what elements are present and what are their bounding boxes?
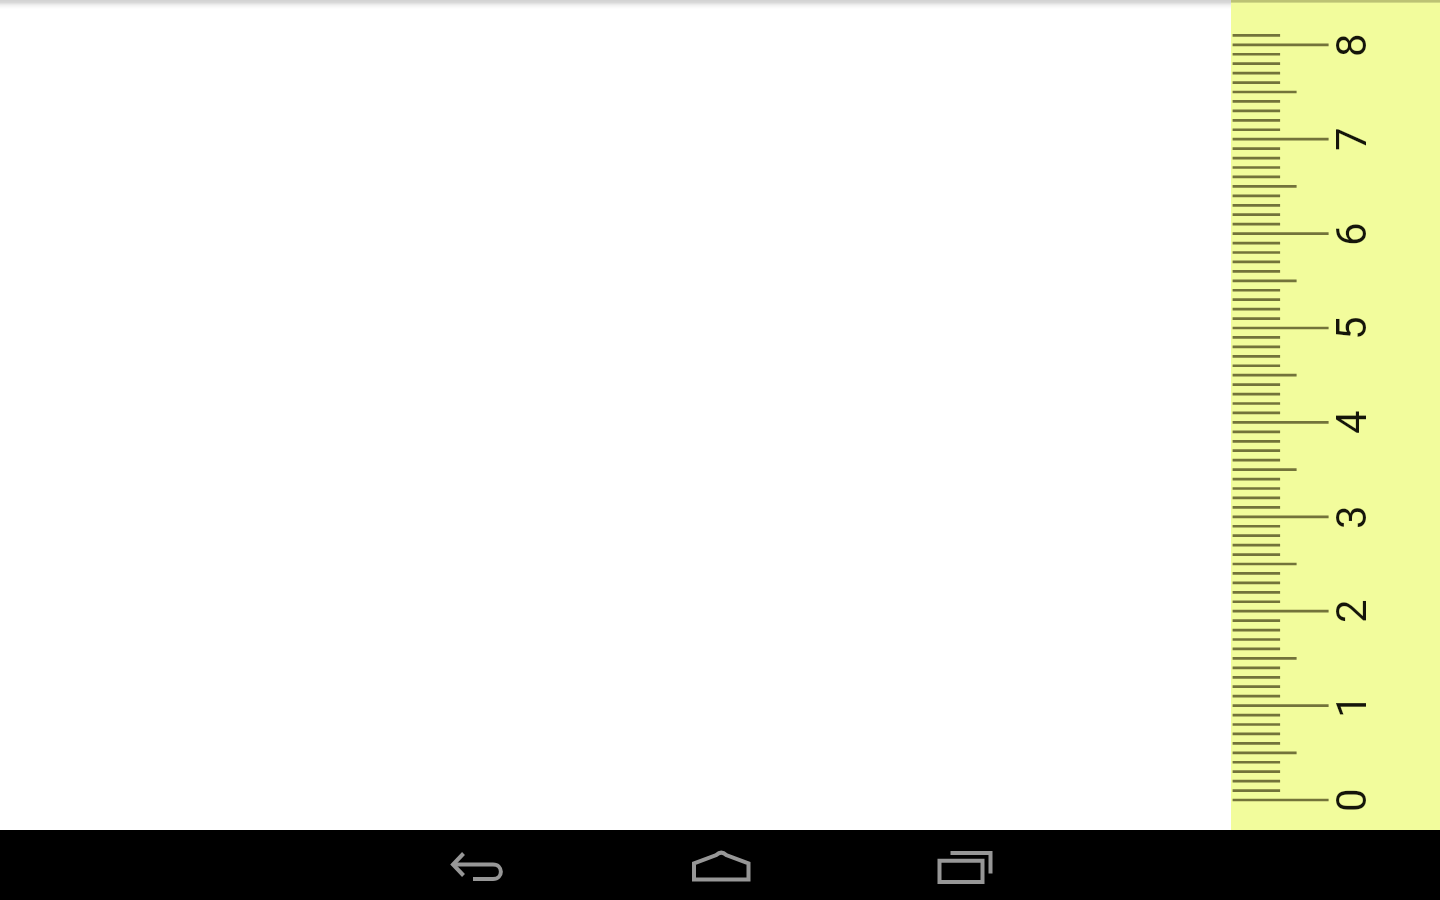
staticText: 4 — [1327, 410, 1376, 434]
staticText: 3 — [1327, 505, 1376, 529]
button[interactable]: Recent apps — [930, 838, 1000, 893]
staticText: 6 — [1327, 222, 1376, 246]
staticText: 7 — [1327, 127, 1376, 151]
staticText: 2 — [1327, 599, 1376, 623]
button[interactable]: Back — [441, 838, 513, 893]
staticText: 8 — [1327, 33, 1376, 57]
button[interactable]: Home — [686, 838, 756, 893]
staticText: 1 — [1327, 694, 1376, 718]
staticText: 0 — [1327, 788, 1376, 812]
staticText: 5 — [1327, 316, 1376, 340]
button[interactable]: Ruler scale in inches — [1231, 0, 1440, 830]
